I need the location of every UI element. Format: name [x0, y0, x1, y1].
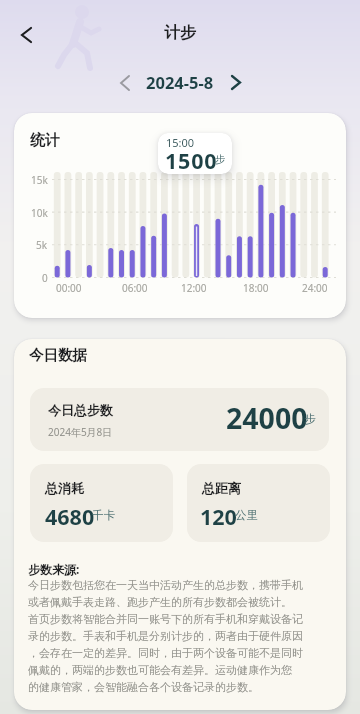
staticText: 总距离	[202, 480, 241, 496]
staticText: 2024-5-8	[146, 71, 214, 93]
button[interactable]	[224, 68, 248, 97]
staticText: 0	[42, 271, 48, 285]
button[interactable]: 总消耗	[30, 464, 173, 542]
staticText: 今日步数包括您在一天当中活动产生的总步数，携带手机	[28, 578, 303, 592]
staticText: 计步	[164, 23, 196, 43]
button[interactable]: 总距离	[187, 464, 330, 542]
button[interactable]	[113, 68, 137, 98]
staticText: 佩戴的，两端的步数也可能会有差异。运动健康作为您	[28, 663, 292, 677]
staticText: 步数来源:	[28, 561, 80, 577]
staticText: 12:00	[181, 281, 207, 295]
staticText: 的健康管家，会智能融合各个设备记录的步数。	[28, 680, 259, 694]
staticText: 或者佩戴手表走路、跑步产生的所有步数都会被统计。	[28, 595, 292, 609]
staticText: 步	[304, 412, 316, 426]
staticText: 06:00	[122, 281, 148, 295]
staticText: 15k	[31, 173, 48, 187]
staticText: ，会存在一定的差异。同时，由于两个设备可能不是同时	[28, 646, 303, 660]
staticText: 10k	[31, 206, 48, 220]
staticText: 公里	[235, 508, 258, 522]
staticText: 今日数据	[29, 346, 87, 364]
button[interactable]	[14, 20, 39, 50]
staticText: 首页步数将智能合并同一账号下的所有手机和穿戴设备记	[28, 612, 303, 626]
staticText: 24:00	[302, 281, 328, 295]
button[interactable]: 今日总步数	[30, 388, 329, 451]
staticText: 2024年5月8日	[48, 425, 113, 439]
staticText: 18:00	[243, 281, 269, 295]
staticText: 千卡	[92, 508, 115, 522]
staticText: 15:00	[166, 135, 195, 150]
staticText: 总消耗	[45, 480, 84, 496]
staticText: 步	[215, 153, 226, 166]
staticText: 1500	[165, 146, 218, 174]
staticText: 00:00	[56, 281, 82, 295]
staticText: 录的步数。手表和手机是分别计步的，两者由于硬件原因	[28, 629, 303, 643]
staticText: 5k	[36, 238, 48, 252]
staticText: 统计	[30, 131, 60, 150]
staticText: 今日总步数	[48, 402, 113, 418]
staticText: 24000	[226, 399, 308, 438]
staticText: 4680	[45, 502, 95, 531]
staticText: 120	[200, 502, 237, 531]
button[interactable]: 15:00	[158, 133, 232, 174]
